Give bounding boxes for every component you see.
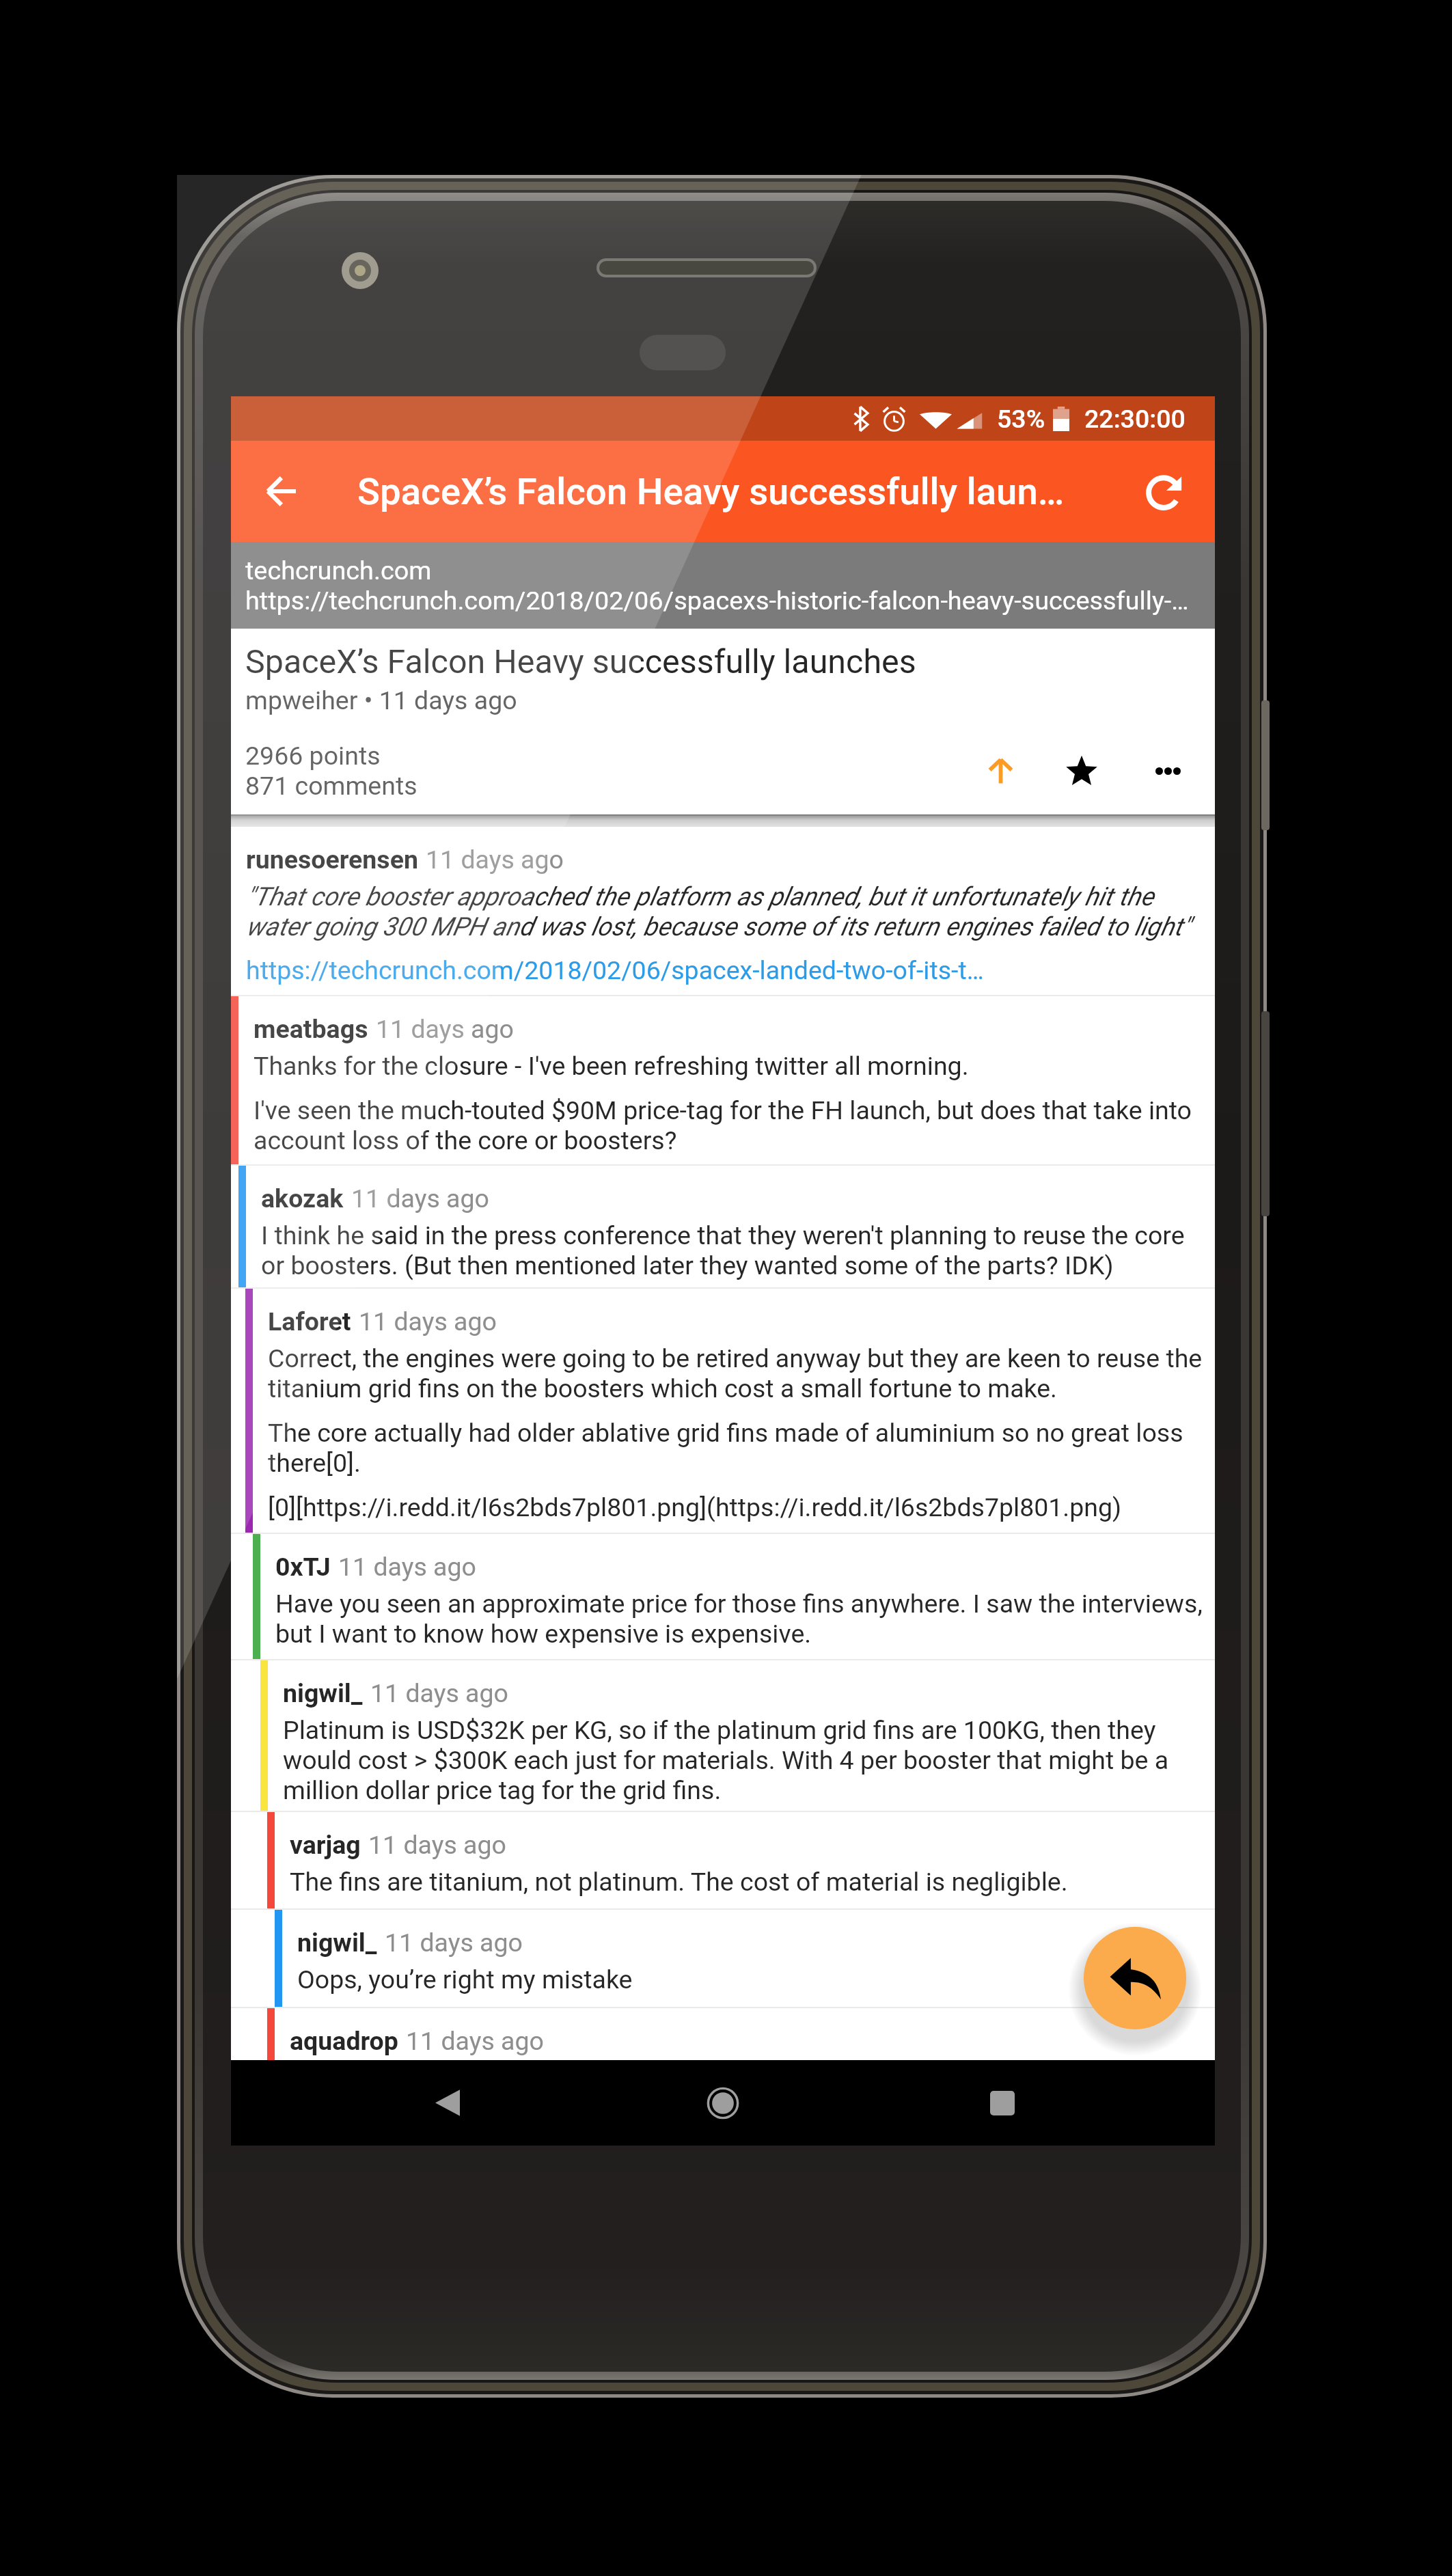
button[interactable]: Recent apps bbox=[958, 2060, 1047, 2146]
staticText: nigwil_ bbox=[297, 1928, 377, 1958]
button[interactable]: runesoerensen bbox=[231, 827, 1215, 995]
staticText: 22:30:00 bbox=[1084, 404, 1186, 434]
button[interactable]: meatbags bbox=[231, 996, 1215, 1164]
staticText: 11 days ago bbox=[351, 1183, 489, 1214]
staticText: 11 days ago bbox=[368, 1830, 506, 1860]
button[interactable]: techcrunch.com bbox=[231, 542, 1215, 629]
button[interactable]: aquadrop bbox=[231, 2008, 1215, 2063]
button[interactable]: nigwil_ bbox=[231, 1660, 1215, 1811]
staticText: 11 days ago bbox=[359, 1306, 497, 1337]
staticText: "That core booster approached the platfo… bbox=[246, 881, 1205, 942]
staticText: SpaceX’s Falcon Heavy successfully launc… bbox=[245, 642, 916, 681]
staticText: Have you seen an approximate price for t… bbox=[275, 1589, 1205, 1649]
staticText: akozak bbox=[261, 1183, 344, 1214]
staticText: techcrunch.com bbox=[245, 556, 432, 586]
staticText: https://techcrunch.com/2018/02/06/spacex… bbox=[245, 586, 1189, 616]
staticText: 11 days ago bbox=[406, 2026, 544, 2056]
staticText: I think he said in the press conference … bbox=[261, 1220, 1205, 1280]
staticText: meatbags bbox=[254, 1014, 368, 1044]
button[interactable]: Navigate up bbox=[243, 454, 318, 529]
staticText: Correct, the engines were going to be re… bbox=[268, 1343, 1205, 1403]
button[interactable]: More options bbox=[1125, 727, 1211, 814]
staticText: 2966 points bbox=[245, 741, 381, 771]
staticText: https://techcrunch.com/2018/02/06/spacex… bbox=[246, 955, 984, 985]
staticText: Platinum is USD$32K per KG, so if the pl… bbox=[283, 1715, 1205, 1805]
staticText: 871 comments bbox=[245, 771, 417, 801]
button[interactable]: Reply bbox=[1084, 1927, 1186, 2029]
staticText: 11 days ago bbox=[385, 1928, 523, 1958]
staticText: 11 days ago bbox=[338, 1552, 476, 1582]
button[interactable]: varjag bbox=[231, 1812, 1215, 1908]
staticText: runesoerensen bbox=[246, 845, 418, 875]
staticText: The fins are titanium, not platinum. The… bbox=[290, 1867, 1068, 1897]
button[interactable]: 0xTJ bbox=[231, 1534, 1215, 1659]
staticText: Oops, you’re right my mistake bbox=[297, 1964, 633, 1995]
staticText: mpweiher • 11 days ago bbox=[245, 685, 517, 715]
button[interactable]: Laforet bbox=[231, 1289, 1215, 1533]
button[interactable]: nigwil_ bbox=[231, 1910, 1215, 2007]
staticText: 11 days ago bbox=[370, 1678, 508, 1708]
staticText: 0xTJ bbox=[275, 1552, 331, 1582]
staticText: varjag bbox=[290, 1830, 361, 1860]
staticText: Thanks for the closure - I've been refre… bbox=[254, 1051, 969, 1081]
button[interactable]: Home bbox=[679, 2060, 767, 2146]
staticText: Laforet bbox=[268, 1306, 351, 1337]
staticText: 11 days ago bbox=[376, 1014, 514, 1044]
staticText: I've seen the much-touted $90M price-tag… bbox=[254, 1095, 1205, 1155]
button[interactable]: SpaceX’s Falcon Heavy successfully launc… bbox=[231, 629, 1215, 814]
staticText: 11 days ago bbox=[426, 845, 564, 875]
button[interactable]: Back bbox=[403, 2060, 492, 2146]
staticText: 53% bbox=[997, 404, 1045, 434]
button[interactable]: Refresh bbox=[1127, 454, 1203, 529]
button[interactable]: Save bbox=[1039, 727, 1125, 814]
button[interactable]: akozak bbox=[231, 1166, 1215, 1287]
button[interactable]: Upvote bbox=[962, 727, 1039, 814]
staticText: nigwil_ bbox=[283, 1678, 363, 1708]
staticText: The core actually had older ablative gri… bbox=[268, 1418, 1205, 1478]
staticText: SpaceX’s Falcon Heavy successfully laun… bbox=[357, 469, 1065, 513]
staticText: [0][https://i.redd.it/l6s2bds7pl801.png]… bbox=[268, 1492, 1122, 1522]
staticText: aquadrop bbox=[290, 2026, 398, 2056]
